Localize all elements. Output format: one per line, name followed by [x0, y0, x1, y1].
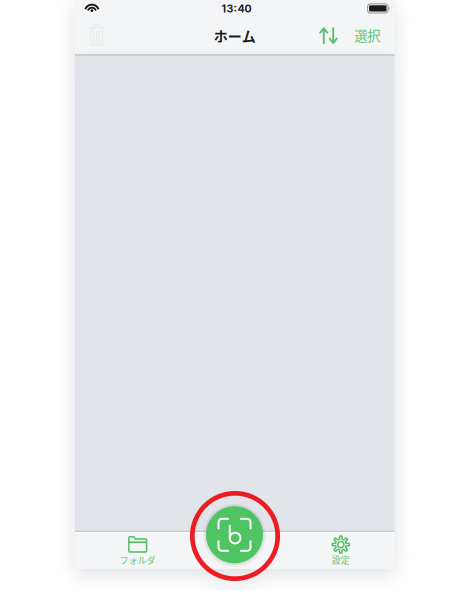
button[interactable]: スキャン: [195, 530, 275, 569]
staticText: 13:40: [221, 2, 251, 15]
button[interactable]: 削除: [78, 20, 116, 50]
staticText: フォルダ: [120, 554, 156, 566]
staticText: 選択: [354, 25, 380, 45]
button[interactable]: フォルダ: [105, 530, 171, 569]
staticText: ホーム: [214, 25, 256, 46]
button[interactable]: スキャン: [200, 501, 268, 569]
button[interactable]: 選択: [346, 20, 388, 50]
button[interactable]: 並べ替え: [311, 20, 345, 51]
staticText: 設定: [332, 553, 350, 566]
button[interactable]: 設定: [308, 530, 374, 569]
